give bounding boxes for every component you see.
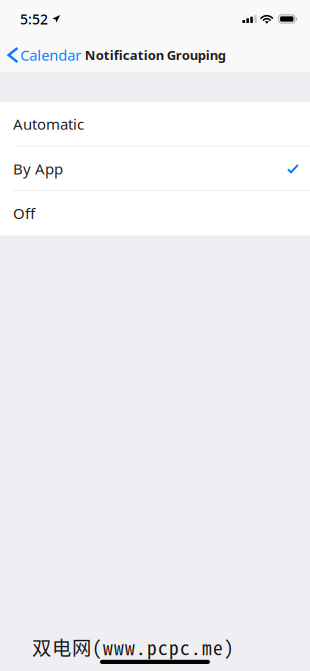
staticText: Off xyxy=(13,203,35,223)
staticText: Automatic xyxy=(13,114,84,134)
button[interactable]: By App xyxy=(0,147,310,191)
button[interactable]: Calendar xyxy=(0,38,85,72)
staticText: Notification Grouping xyxy=(85,46,226,64)
button[interactable]: Off xyxy=(0,191,310,235)
staticText: By App xyxy=(13,158,63,179)
button[interactable]: Automatic xyxy=(0,102,310,146)
staticText: Calendar xyxy=(20,45,81,65)
staticText: 双电网(www.pcpc.me) xyxy=(32,633,234,661)
staticText: 5:52 xyxy=(20,9,48,29)
